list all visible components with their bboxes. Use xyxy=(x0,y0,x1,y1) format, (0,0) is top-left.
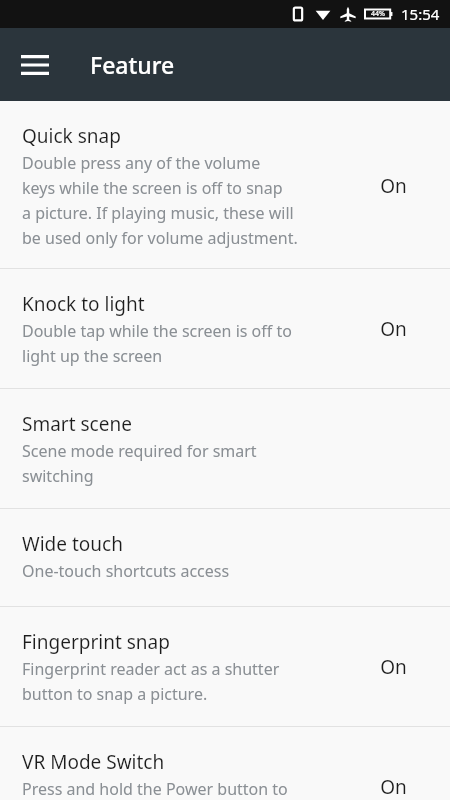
staticText: Scene mode required for smart switching xyxy=(22,440,257,486)
staticText: Knock to light xyxy=(22,291,145,317)
button[interactable]: VR Mode Switch xyxy=(0,727,450,800)
staticText: On xyxy=(380,316,407,342)
staticText: VR Mode Switch xyxy=(22,749,165,775)
staticText: Quick snap xyxy=(22,123,121,149)
button[interactable]: Knock to light xyxy=(0,269,450,388)
staticText: Double press any of the volume keys whil… xyxy=(22,152,298,248)
staticText: Smart scene xyxy=(22,411,132,437)
staticText: On xyxy=(380,654,407,680)
staticText: 44% xyxy=(371,9,385,19)
staticText: Double tap while the screen is off to li… xyxy=(22,320,292,366)
staticText: Feature xyxy=(90,49,175,80)
staticText: One-touch shortcuts access xyxy=(22,560,230,582)
button[interactable]: Open navigation menu xyxy=(10,40,60,90)
button[interactable]: Quick snap xyxy=(0,101,450,268)
button[interactable]: Wide touch xyxy=(0,509,450,606)
staticText: Fingerprint reader act as a shutter butt… xyxy=(22,658,280,704)
staticText: Press and hold the Power button to displ… xyxy=(22,778,288,800)
staticText: On xyxy=(380,173,407,199)
staticText: 15:54 xyxy=(401,4,440,24)
button[interactable]: Fingerprint snap xyxy=(0,607,450,726)
staticText: Fingerprint snap xyxy=(22,629,170,655)
staticText: Wide touch xyxy=(22,531,123,557)
button[interactable]: Smart scene xyxy=(0,389,450,508)
staticText: On xyxy=(380,774,407,800)
